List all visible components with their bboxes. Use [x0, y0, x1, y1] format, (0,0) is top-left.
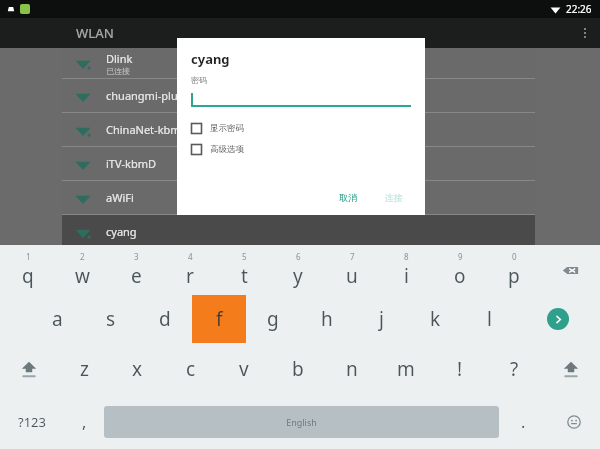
button[interactable]: cyang — [62, 215, 535, 248]
button[interactable]: f — [192, 295, 246, 343]
staticText: 取消 — [339, 192, 357, 203]
staticText: s — [106, 306, 116, 332]
staticText: p — [508, 263, 520, 289]
staticText: 4 — [188, 251, 193, 262]
staticText: b — [292, 356, 304, 382]
button[interactable]: Shift — [541, 343, 600, 395]
button[interactable]: g — [246, 295, 300, 343]
staticText: k — [430, 306, 441, 332]
staticText: 2 — [80, 251, 85, 262]
button[interactable]: 4 — [163, 245, 217, 295]
staticText: d — [159, 306, 171, 332]
staticText: g — [267, 306, 279, 332]
button[interactable]: Enter — [516, 295, 600, 343]
staticText: 22:26 — [566, 2, 592, 16]
button[interactable]: 5 — [217, 245, 271, 295]
button[interactable]: d — [138, 295, 192, 343]
staticText: ChinaNet-kbmD — [106, 122, 189, 137]
button[interactable]: 8 — [379, 245, 433, 295]
button[interactable]: ! — [433, 343, 487, 395]
staticText: m — [397, 356, 415, 382]
staticText: , — [82, 411, 87, 433]
button[interactable]: English — [104, 406, 499, 438]
button[interactable]: n — [325, 343, 379, 395]
staticText: 密码 — [191, 75, 207, 85]
button[interactable]: l — [462, 295, 516, 343]
button[interactable]: j — [354, 295, 408, 343]
staticText: 0 — [512, 251, 517, 262]
button[interactable]: Backspace — [541, 245, 600, 295]
staticText: ?123 — [18, 413, 46, 431]
staticText: ! — [457, 356, 463, 382]
button[interactable]: x — [111, 343, 164, 395]
button[interactable]: ? — [487, 343, 541, 395]
staticText: English — [286, 416, 317, 428]
staticText: cyang — [106, 224, 137, 239]
staticText: chuangmi-plug_xxxx — [106, 88, 213, 103]
staticText: a — [52, 306, 63, 332]
staticText: q — [22, 263, 34, 289]
staticText: c — [186, 356, 196, 382]
button[interactable]: 取消 — [331, 188, 365, 207]
staticText: t — [241, 263, 248, 289]
button[interactable]: , — [64, 395, 104, 449]
staticText: l — [487, 306, 492, 332]
staticText: h — [321, 306, 333, 332]
staticText: e — [131, 263, 142, 289]
button[interactable]: ChinaNet-kbmD — [62, 113, 535, 146]
button[interactable]: h — [300, 295, 354, 343]
button[interactable]: More options — [570, 18, 600, 48]
button[interactable]: s — [84, 295, 138, 343]
staticText: y — [293, 263, 303, 289]
button[interactable]: z — [58, 343, 111, 395]
staticText: cyang — [191, 50, 230, 68]
staticText: 8 — [404, 251, 409, 262]
staticText: o — [454, 263, 466, 289]
button[interactable]: 3 — [109, 245, 163, 295]
staticText: 1 — [26, 251, 31, 262]
button[interactable]: 9 — [433, 245, 487, 295]
button[interactable]: b — [271, 343, 325, 395]
staticText: WLAN — [76, 24, 114, 42]
staticText: iTV-kbmD — [106, 156, 157, 171]
button[interactable]: m — [379, 343, 433, 395]
staticText: w — [75, 263, 90, 289]
button[interactable]: ?123 — [0, 395, 64, 449]
button[interactable]: Dlink — [62, 48, 535, 78]
button[interactable]: 显示密码 — [191, 122, 244, 135]
staticText: 9 — [458, 251, 463, 262]
button[interactable]: Shift — [0, 343, 58, 395]
staticText: r — [186, 263, 194, 289]
button[interactable]: 0 — [487, 245, 541, 295]
staticText: aWiFi — [106, 190, 134, 205]
button[interactable]: k — [408, 295, 462, 343]
button[interactable]: aWiFi — [62, 181, 535, 214]
staticText: 7 — [350, 251, 355, 262]
button[interactable]: chuangmi-plug_xxxx — [62, 79, 535, 112]
staticText: . — [521, 411, 526, 433]
staticText: 6 — [296, 251, 301, 262]
button[interactable]: Emoji — [547, 395, 600, 449]
staticText: 显示密码 — [210, 123, 244, 134]
staticText: 高级选项 — [210, 144, 244, 155]
staticText: x — [132, 356, 143, 382]
staticText: i — [404, 263, 409, 289]
staticText: z — [80, 356, 89, 382]
button[interactable]: a — [30, 295, 84, 343]
button[interactable]: c — [164, 343, 217, 395]
staticText: 5 — [242, 251, 247, 262]
button[interactable]: 2 — [55, 245, 109, 295]
button[interactable]: v — [217, 343, 271, 395]
staticText: j — [379, 306, 384, 332]
staticText: u — [346, 263, 358, 289]
button[interactable]: 连接 — [377, 188, 411, 207]
staticText: ? — [510, 356, 519, 382]
staticText: f — [216, 306, 223, 332]
button[interactable]: iTV-kbmD — [62, 147, 535, 180]
button[interactable]: 1 — [0, 245, 55, 295]
staticText: 3 — [134, 251, 139, 262]
button[interactable]: 高级选项 — [191, 143, 244, 156]
button[interactable]: 6 — [271, 245, 325, 295]
button[interactable]: 7 — [325, 245, 379, 295]
button[interactable]: . — [499, 395, 547, 449]
